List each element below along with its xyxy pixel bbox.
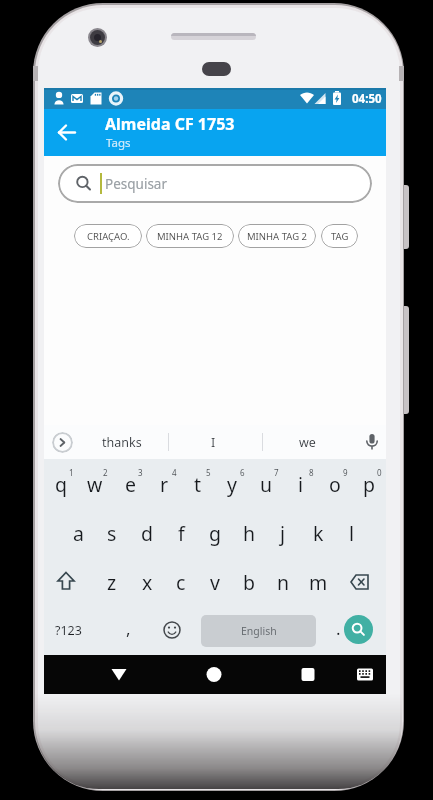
staticText: k	[313, 520, 324, 547]
button[interactable]: b	[229, 568, 269, 596]
button[interactable]	[162, 620, 182, 640]
staticText: we	[299, 434, 316, 451]
button[interactable]: English	[201, 615, 316, 647]
staticText: e	[125, 471, 136, 498]
staticText: l	[349, 520, 355, 547]
staticText: i	[298, 471, 304, 498]
staticText: d	[141, 520, 153, 547]
button[interactable]	[194, 655, 234, 694]
button[interactable]: c	[161, 568, 201, 596]
staticText: Pesquisar	[105, 175, 167, 193]
staticText: 0	[377, 467, 382, 478]
staticText: 04:50	[352, 91, 382, 107]
staticText: .	[336, 617, 341, 640]
button[interactable]: Pesquisar	[58, 164, 372, 203]
button[interactable]: TAG	[321, 224, 358, 248]
staticText: r	[160, 471, 169, 498]
button[interactable]: k	[298, 519, 338, 547]
button[interactable]: i	[281, 470, 321, 498]
button[interactable]: y	[212, 470, 252, 498]
staticText: TAG	[331, 230, 349, 243]
staticText: ?123	[55, 622, 82, 639]
button[interactable]: t	[178, 470, 218, 498]
staticText: s	[107, 520, 117, 547]
staticText: Almeida CF 1753	[105, 113, 235, 135]
button[interactable]: s	[92, 519, 132, 547]
button[interactable]: v	[195, 568, 235, 596]
staticText: v	[210, 569, 220, 596]
staticText: Tags	[106, 135, 131, 151]
staticText: b	[243, 569, 255, 596]
staticText: thanks	[102, 434, 142, 451]
button[interactable]: MINHA TAG 12	[146, 224, 234, 248]
button[interactable]: l	[332, 519, 372, 547]
button[interactable]: I	[170, 425, 256, 459]
button[interactable]: ?123	[48, 616, 88, 644]
button[interactable]: f	[161, 519, 201, 547]
button[interactable]: ,	[108, 614, 148, 642]
staticText: I	[211, 434, 216, 451]
button[interactable]: p	[349, 470, 389, 498]
button[interactable]: g	[195, 519, 235, 547]
button[interactable]	[52, 568, 80, 596]
staticText: CRIAÇAO.	[87, 230, 130, 243]
button[interactable]	[364, 425, 386, 459]
button[interactable]: j	[263, 519, 303, 547]
staticText: 2	[103, 467, 108, 478]
staticText: 3	[138, 467, 143, 478]
button[interactable]	[344, 570, 372, 594]
button[interactable]: .	[318, 614, 358, 642]
staticText: p	[363, 471, 375, 498]
button[interactable]: z	[92, 568, 132, 596]
staticText: a	[73, 520, 84, 547]
staticText: g	[209, 520, 221, 547]
staticText: y	[227, 471, 237, 498]
button[interactable]: r	[144, 470, 184, 498]
staticText: o	[329, 471, 341, 498]
button[interactable]: m	[298, 568, 338, 596]
staticText: j	[280, 520, 286, 547]
button[interactable]: x	[127, 568, 167, 596]
staticText: MINHA TAG 2	[247, 230, 307, 243]
staticText: ,	[126, 617, 131, 640]
button[interactable]: thanks	[78, 425, 166, 459]
staticText: 9	[343, 467, 348, 478]
button[interactable]	[52, 432, 73, 453]
button[interactable]: n	[263, 568, 303, 596]
staticText: u	[260, 471, 273, 498]
button[interactable]: e	[110, 470, 150, 498]
staticText: h	[243, 520, 256, 547]
button[interactable]: h	[229, 519, 269, 547]
staticText: t	[194, 471, 202, 498]
button[interactable]: CRIAÇAO.	[74, 224, 142, 248]
staticText: MINHA TAG 12	[157, 230, 223, 243]
staticText: 5	[206, 467, 211, 478]
staticText: 4	[172, 467, 177, 478]
staticText: z	[107, 569, 117, 596]
staticText: 8	[309, 467, 314, 478]
staticText: m	[309, 569, 328, 596]
staticText: x	[142, 569, 153, 596]
button[interactable]	[99, 655, 139, 694]
staticText: n	[277, 569, 290, 596]
button[interactable]: d	[127, 519, 167, 547]
button[interactable]	[288, 655, 328, 694]
staticText: f	[178, 520, 185, 547]
button[interactable]: a	[58, 519, 98, 547]
button[interactable]: o	[315, 470, 355, 498]
staticText: 7	[274, 467, 279, 478]
button[interactable]	[344, 615, 373, 644]
staticText: c	[176, 569, 186, 596]
button[interactable]: w	[75, 470, 115, 498]
staticText: English	[241, 624, 277, 638]
button[interactable]: MINHA TAG 2	[238, 224, 316, 248]
button[interactable]: q	[41, 470, 81, 498]
staticText: q	[55, 471, 67, 498]
staticText: w	[87, 471, 103, 498]
staticText: 1	[69, 467, 74, 478]
button[interactable]	[347, 655, 383, 694]
button[interactable]: u	[246, 470, 286, 498]
staticText: 6	[240, 467, 245, 478]
button[interactable]: we	[264, 425, 350, 459]
